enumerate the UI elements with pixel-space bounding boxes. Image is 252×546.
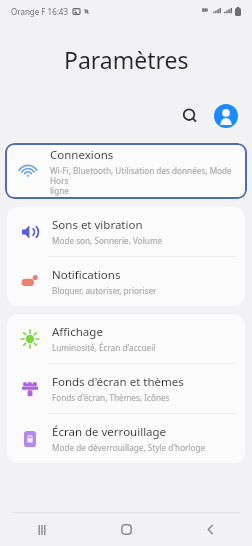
staticText: Fonds d'écran, Thèmes, Icônes xyxy=(52,392,170,403)
button[interactable]: Retour xyxy=(168,513,252,546)
button[interactable]: Compte xyxy=(214,104,238,128)
button[interactable]: Connexions xyxy=(5,143,247,199)
staticText: Notifications xyxy=(52,267,121,283)
button[interactable]: Écran de verrouillage xyxy=(7,414,245,463)
staticText: Paramètres xyxy=(64,44,189,75)
staticText: Orange F 16:43 xyxy=(11,6,69,17)
button[interactable]: Affichage xyxy=(7,314,245,363)
button[interactable]: Accueil xyxy=(84,513,168,546)
button[interactable]: Rechercher xyxy=(176,102,204,130)
button[interactable]: Notifications xyxy=(7,257,245,306)
staticText: Affichage xyxy=(52,324,103,340)
staticText: Sons et vibration xyxy=(52,217,143,233)
staticText: Connexions xyxy=(50,147,114,163)
button[interactable]: Sons et vibration xyxy=(7,207,245,256)
staticText: Luminosité, Écran d'accueil xyxy=(52,342,156,353)
button[interactable]: Fonds d'écran et thèmes xyxy=(7,364,245,413)
staticText: Wi-Fi, Bluetooth, Utilisation des donnée… xyxy=(50,165,237,196)
staticText: Bloquer, autoriser, prioriser xyxy=(52,285,157,296)
staticText: Mode son, Sonnerie, Volume xyxy=(52,235,163,246)
staticText: Fonds d'écran et thèmes xyxy=(52,374,184,390)
staticText: Mode de déverrouillage, Style d'horloge xyxy=(52,442,206,453)
button[interactable]: Applications récentes xyxy=(0,513,84,546)
staticText: Écran de verrouillage xyxy=(52,424,167,440)
